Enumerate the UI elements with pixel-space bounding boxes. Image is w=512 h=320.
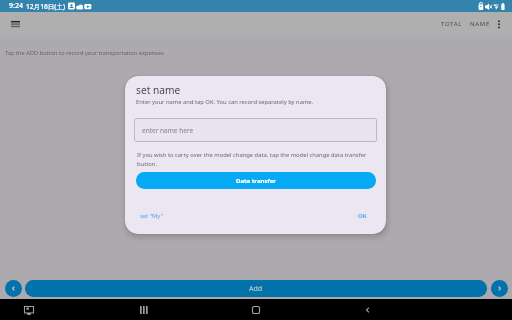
button[interactable]: TOTAL xyxy=(437,12,467,35)
button[interactable]: Screenshot xyxy=(21,302,37,318)
button[interactable]: Recent apps xyxy=(136,302,152,318)
staticText: TOTAL xyxy=(441,20,463,28)
button[interactable]: Home xyxy=(248,302,264,318)
button[interactable]: Add xyxy=(25,280,487,297)
button[interactable]: Navigation menu xyxy=(5,14,25,34)
button[interactable]: Previous xyxy=(5,280,22,297)
button[interactable]: Data transfer xyxy=(136,172,376,189)
staticText: 12月16日(土) xyxy=(26,2,65,11)
staticText: OK xyxy=(358,212,367,220)
button[interactable]: OK xyxy=(354,206,371,226)
staticText: 9:24 xyxy=(9,1,23,11)
button[interactable]: NAME xyxy=(466,12,494,35)
button[interactable]: Back xyxy=(360,302,376,318)
button[interactable]: More options xyxy=(491,16,507,32)
staticText: Enter your name and tap OK. You can reco… xyxy=(136,98,314,106)
staticText: NAME xyxy=(470,20,490,28)
staticText: Data transfer xyxy=(236,177,277,185)
staticText: Add xyxy=(249,284,263,294)
staticText: set "My" xyxy=(140,212,163,220)
button[interactable]: Next xyxy=(491,280,508,297)
staticText: enter name here xyxy=(142,126,194,135)
staticText: set name xyxy=(136,83,181,97)
button[interactable]: enter name here xyxy=(134,118,377,142)
button[interactable]: set "My" xyxy=(136,206,167,226)
staticText: Tap the ADD button to record your transp… xyxy=(5,49,164,57)
staticText: If you wish to carry over the model chan… xyxy=(137,151,367,167)
